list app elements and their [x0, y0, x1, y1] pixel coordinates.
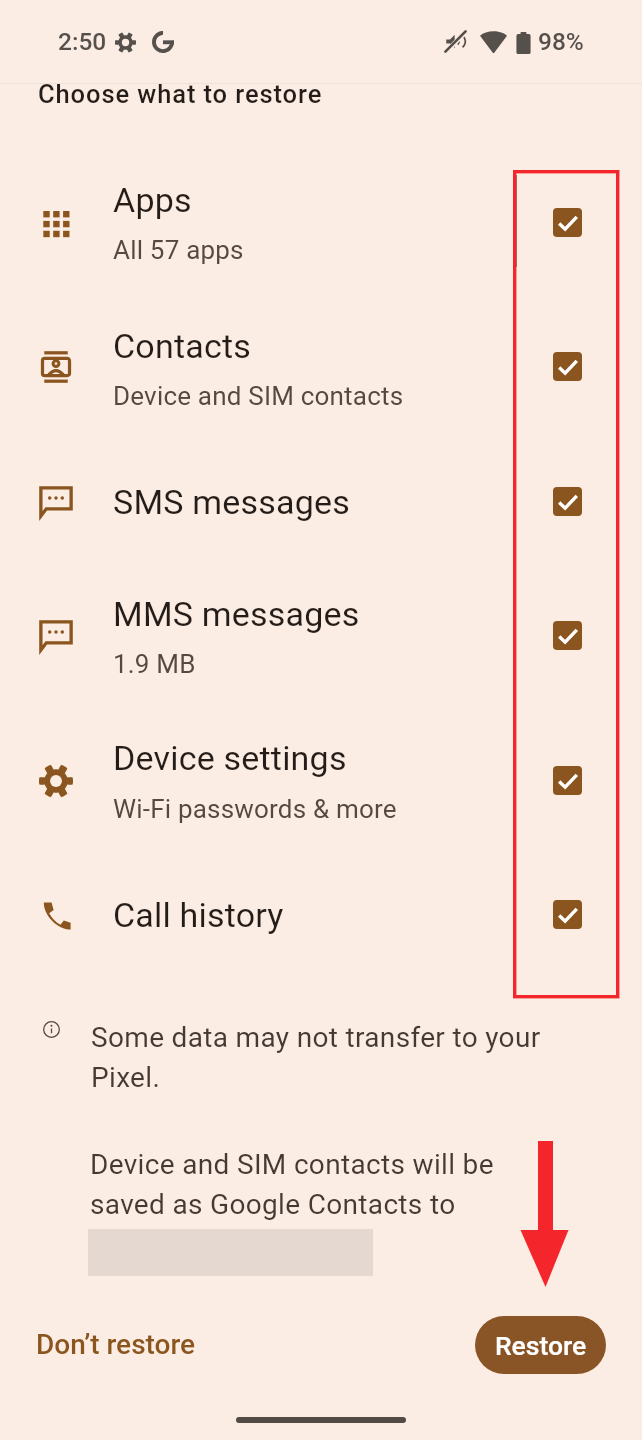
staticText: 98% — [538, 27, 584, 56]
staticText: SMS messages — [113, 482, 350, 522]
staticText: Wi-Fi passwords & more — [113, 794, 397, 824]
staticText: 1.9 MB — [113, 649, 196, 679]
staticText: Device and SIM contacts will be saved as… — [90, 1148, 495, 1221]
staticText: Call history — [113, 895, 284, 935]
button[interactable]: Device settings — [0, 725, 642, 868]
button[interactable]: MMS messages — [0, 582, 642, 725]
button[interactable]: Select Contacts — [553, 352, 582, 381]
button[interactable]: Select Device settings — [553, 766, 582, 795]
button[interactable]: Don’t restore — [20, 1318, 212, 1371]
staticText: Contacts — [113, 326, 251, 366]
staticText: Don’t restore — [36, 1328, 196, 1361]
staticText: Device settings — [113, 738, 347, 778]
button[interactable]: Select SMS messages — [553, 487, 582, 516]
staticText: All 57 apps — [113, 235, 244, 265]
staticText: Some data may not transfer to your Pixel… — [91, 1021, 543, 1094]
button[interactable]: Call history — [0, 868, 642, 995]
staticText: Apps — [113, 180, 192, 220]
staticText: 2:50 — [58, 27, 107, 56]
staticText: Restore — [495, 1330, 587, 1361]
button[interactable]: Select Apps — [553, 208, 582, 237]
button[interactable]: Select Call history — [553, 900, 582, 929]
staticText: MMS messages — [113, 594, 360, 634]
staticText: Choose what to restore — [38, 79, 323, 109]
button[interactable]: Restore — [475, 1316, 606, 1374]
staticText: Device and SIM contacts — [113, 381, 404, 411]
button[interactable]: Apps — [0, 169, 642, 312]
button[interactable]: SMS messages — [0, 455, 642, 582]
button[interactable]: Select MMS messages — [553, 621, 582, 650]
button[interactable]: Contacts — [0, 312, 642, 455]
